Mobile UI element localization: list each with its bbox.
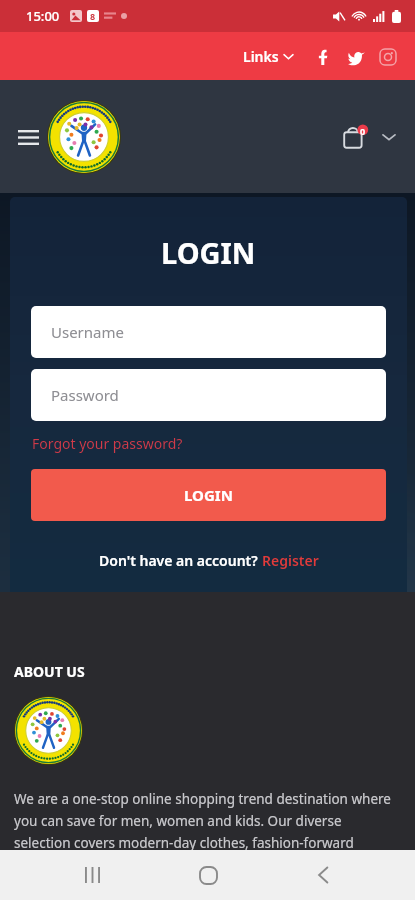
staticText: LOGIN xyxy=(184,485,233,505)
staticText: Register xyxy=(262,551,319,570)
button[interactable]: Home xyxy=(47,100,121,174)
staticText: Forgot your password? xyxy=(32,434,183,453)
button[interactable]: Forgot your password? xyxy=(32,434,183,453)
staticText: 15:00 xyxy=(26,7,60,25)
button[interactable]: Instagram xyxy=(375,44,401,70)
button[interactable]: Facebook xyxy=(311,44,337,70)
staticText: 0 xyxy=(360,125,366,137)
button[interactable]: Twitter xyxy=(343,44,369,70)
button[interactable]: LOGIN xyxy=(31,469,386,521)
button[interactable]: Password xyxy=(31,369,386,421)
staticText: ABOUT US xyxy=(14,662,85,681)
button[interactable]: Register xyxy=(262,551,319,570)
button[interactable]: Username xyxy=(31,306,386,358)
staticText: 8 xyxy=(90,10,96,22)
button[interactable]: Menu xyxy=(10,119,46,155)
button[interactable]: Cart, 0 items xyxy=(335,117,375,157)
button[interactable]: Account menu xyxy=(375,123,403,151)
staticText: We are a one-stop online shopping trend … xyxy=(14,790,401,850)
staticText: Password xyxy=(51,385,119,405)
staticText: Links xyxy=(243,47,279,66)
staticText: Username xyxy=(51,322,124,342)
button[interactable]: Links xyxy=(237,41,299,72)
button[interactable]: Recents xyxy=(68,851,116,899)
staticText: LOGIN xyxy=(161,233,256,272)
button[interactable]: Back xyxy=(299,851,347,899)
staticText: Don't have an account? xyxy=(99,551,262,570)
button[interactable]: Home xyxy=(184,851,232,899)
